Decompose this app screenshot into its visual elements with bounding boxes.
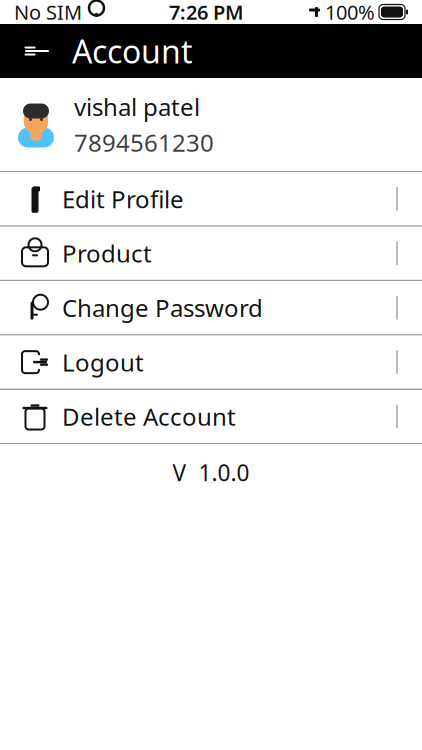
staticText: vishal patel (74, 91, 200, 122)
button[interactable]: Product (0, 227, 422, 280)
button[interactable]: Logout (0, 336, 422, 389)
button[interactable]: Back (14, 24, 60, 78)
staticText: 7894561230 (74, 126, 214, 158)
staticText: Account (72, 30, 193, 72)
button[interactable]: Change Password (0, 281, 422, 334)
staticText: V 1.0.0 (172, 457, 249, 487)
button[interactable]: Edit Profile (0, 172, 422, 225)
staticText: Edit Profile (62, 183, 184, 215)
staticText: Change Password (62, 292, 263, 324)
staticText: Product (62, 237, 152, 269)
staticText: 100% (325, 0, 375, 25)
staticText: Logout (62, 346, 144, 378)
staticText: 7:26 PM (169, 0, 244, 25)
staticText: Delete Account (62, 401, 236, 432)
staticText: No SIM (14, 0, 82, 25)
button[interactable]: Delete Account (0, 390, 422, 443)
